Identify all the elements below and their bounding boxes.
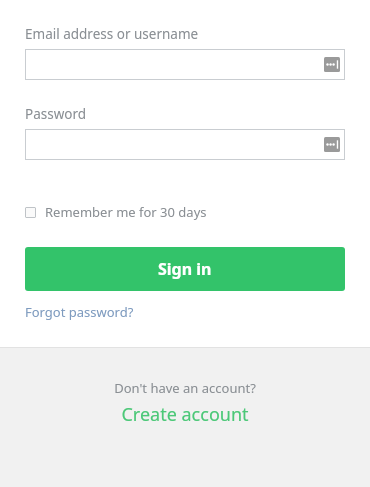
button[interactable]: Remember me for 30 days: [25, 203, 207, 221]
staticText: Email address or username: [25, 25, 199, 43]
button[interactable]: Sign in: [25, 247, 345, 291]
staticText: Forgot password?: [25, 303, 134, 321]
staticText: Create account: [121, 402, 249, 427]
button[interactable]: Autofill: [324, 137, 340, 152]
staticText: Remember me for 30 days: [45, 203, 207, 221]
staticText: Password: [25, 105, 87, 123]
staticText: Sign in: [158, 258, 212, 280]
button[interactable]: Autofill: [25, 129, 345, 160]
staticText: Don't have an account?: [114, 379, 256, 397]
button[interactable]: Autofill: [324, 57, 340, 72]
button[interactable]: Forgot password?: [25, 303, 134, 321]
button[interactable]: Create account: [121, 402, 249, 427]
button[interactable]: Autofill: [25, 49, 345, 80]
